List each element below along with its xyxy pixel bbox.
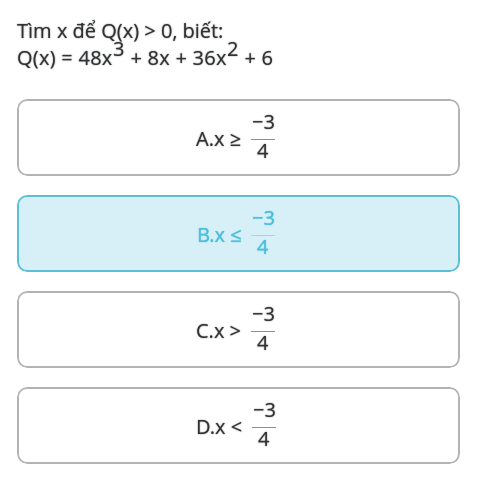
staticText: C.x > <box>196 317 242 344</box>
staticText: Q(x) = 48x <box>17 44 113 71</box>
staticText: 4 <box>257 137 269 164</box>
staticText: + 6 <box>239 44 274 71</box>
staticText: A.x ≥ <box>196 125 242 152</box>
button[interactable]: A.x ≥ <box>17 99 460 176</box>
staticText: D.x < <box>196 413 243 440</box>
staticText: 4 <box>257 329 269 356</box>
staticText: −3 <box>252 204 275 231</box>
staticText: B.x ≤ <box>197 221 242 248</box>
other: Multiple choice question <box>17 0 482 494</box>
staticText: 4 <box>258 425 270 452</box>
staticText: −3 <box>252 108 275 135</box>
staticText: Tìm x để Q(x) > 0, biết: <box>17 17 224 44</box>
staticText: 4 <box>257 233 269 260</box>
staticText: −3 <box>252 300 275 327</box>
button[interactable]: D.x < <box>17 387 460 464</box>
staticText: −3 <box>253 396 276 423</box>
staticText: + 8x + 36x <box>125 44 227 71</box>
button[interactable]: C.x > <box>17 291 460 368</box>
button[interactable]: B.x ≤ <box>17 195 460 272</box>
staticText: 2 <box>227 35 239 62</box>
staticText: 3 <box>113 35 125 62</box>
